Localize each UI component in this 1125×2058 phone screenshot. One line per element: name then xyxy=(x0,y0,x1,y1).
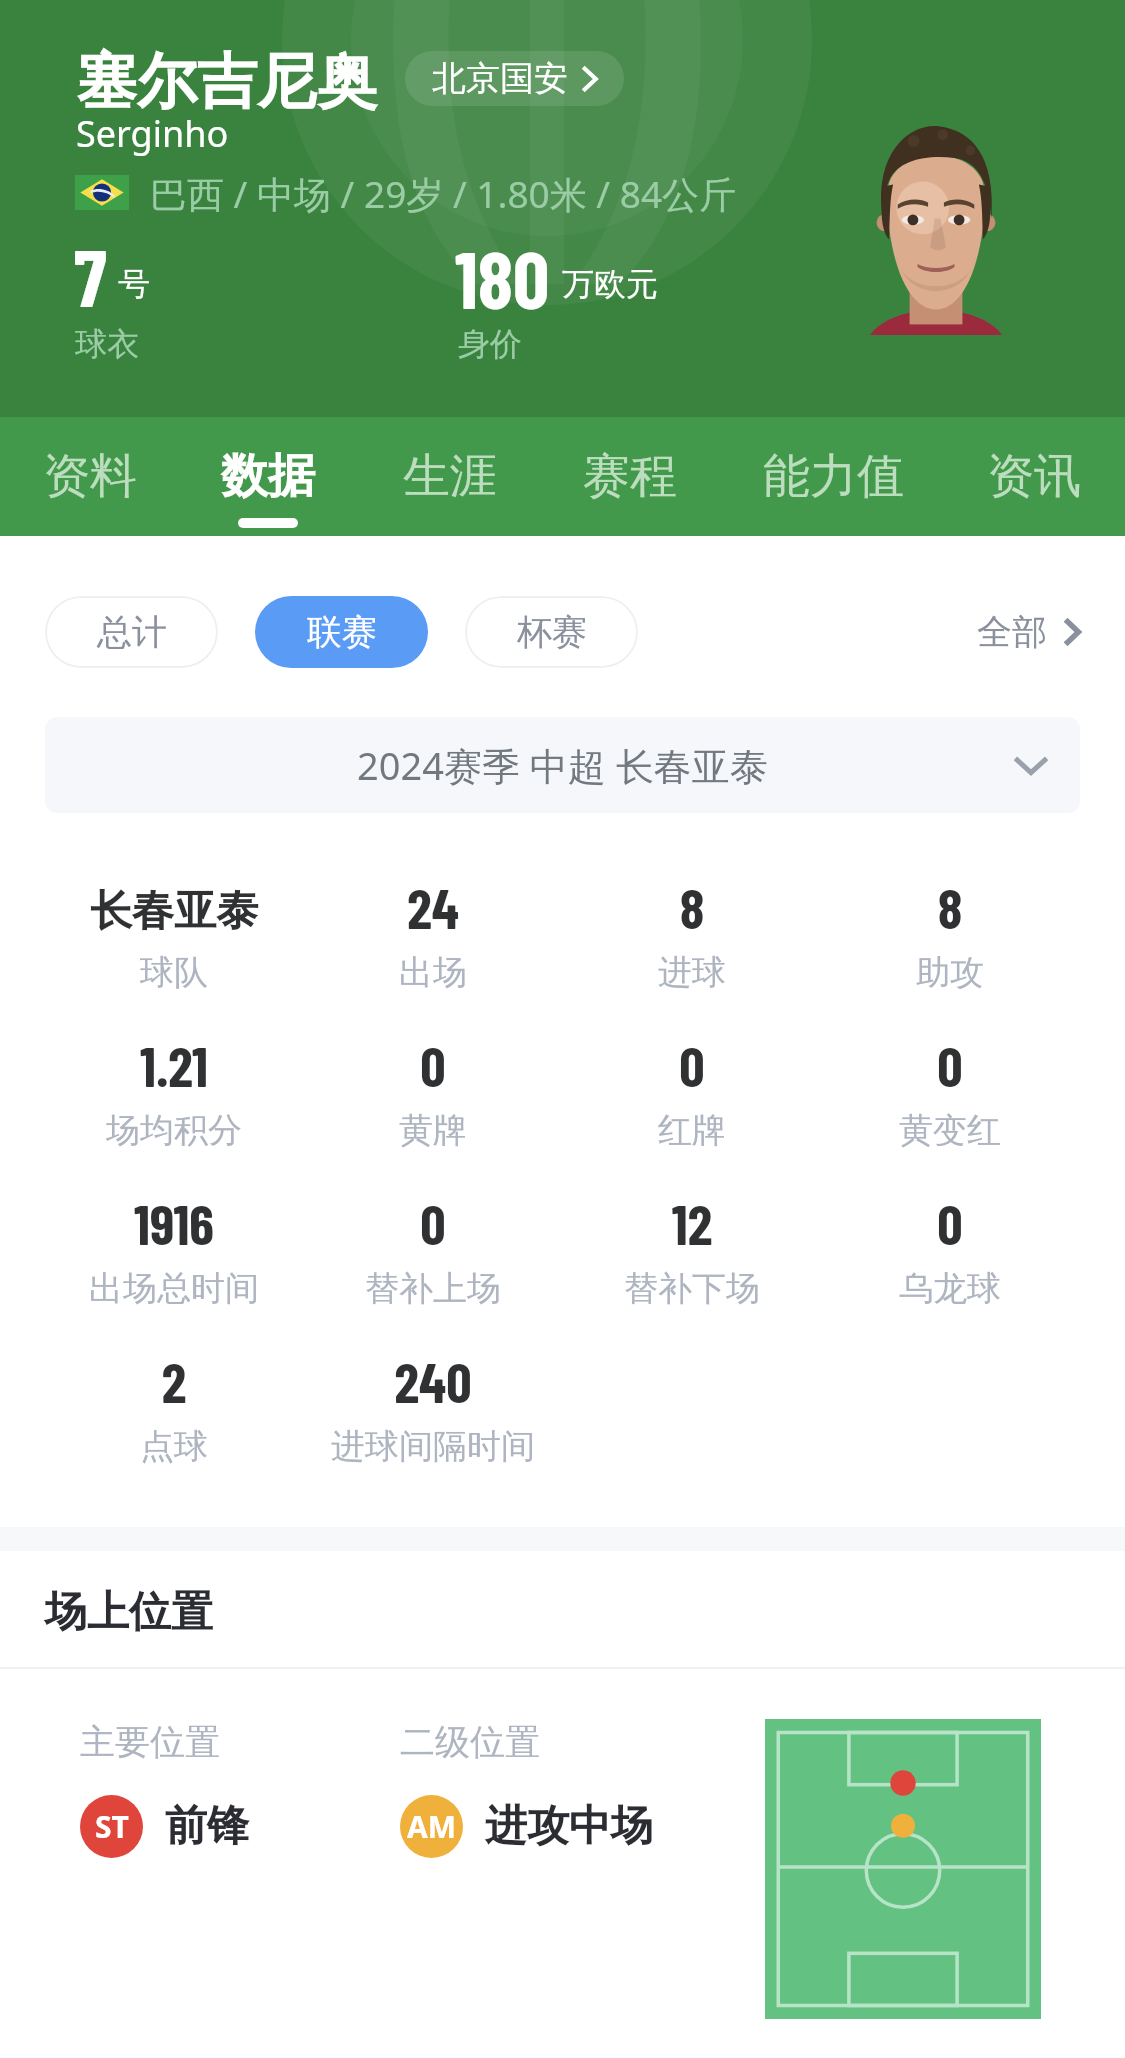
staticText: 乌龙球 xyxy=(821,1267,1079,1310)
button[interactable]: 资料 xyxy=(38,417,142,536)
button[interactable]: AM xyxy=(400,1795,463,1858)
staticText: 资讯 xyxy=(987,447,1081,506)
staticText: 场上位置 xyxy=(45,1586,213,1639)
other: Player photo xyxy=(870,123,1002,335)
button[interactable]: 数据 xyxy=(216,417,320,536)
button[interactable]: 8 xyxy=(821,859,1079,1009)
staticText: 0 xyxy=(304,1189,562,1256)
staticText: 赛程 xyxy=(583,447,677,506)
staticText: 球衣 xyxy=(75,324,139,364)
staticText: 2024赛季 中超 长春亚泰 xyxy=(357,739,768,791)
staticText: 前锋 xyxy=(165,1800,249,1853)
staticText: 全部 xyxy=(977,610,1047,654)
staticText: 助攻 xyxy=(821,951,1079,994)
staticText: 长春亚泰 xyxy=(45,885,303,938)
button[interactable]: 0 xyxy=(821,1175,1079,1325)
staticText: 7 xyxy=(74,227,107,323)
staticText: 联赛 xyxy=(307,610,377,654)
staticText: 红牌 xyxy=(563,1109,821,1152)
staticText: 球队 xyxy=(45,951,303,994)
other: Pitch position xyxy=(765,1719,1041,2019)
staticText: 身价 xyxy=(458,324,522,364)
button[interactable]: 北京国安 xyxy=(405,51,624,106)
button[interactable]: 24 xyxy=(304,859,562,1009)
staticText: 进攻中场 xyxy=(485,1800,653,1853)
staticText: AM xyxy=(407,1806,457,1847)
staticText: 0 xyxy=(563,1031,821,1098)
staticText: 1916 xyxy=(45,1189,303,1256)
button[interactable]: 0 xyxy=(304,1017,562,1167)
button[interactable]: 0 xyxy=(304,1175,562,1325)
staticText: 巴西 / 中场 / 29岁 / 1.80米 / 84公斤 xyxy=(150,168,737,219)
button[interactable]: 赛程 xyxy=(578,417,682,536)
button[interactable]: 能力值 xyxy=(757,417,909,536)
staticText: 点球 xyxy=(45,1425,303,1468)
staticText: 主要位置 xyxy=(80,1720,220,1764)
staticText: 0 xyxy=(304,1031,562,1098)
staticText: 进球间隔时间 xyxy=(304,1425,562,1468)
staticText: 杯赛 xyxy=(517,610,587,654)
staticText: 进球 xyxy=(563,951,821,994)
button[interactable]: 全部 xyxy=(977,596,1080,668)
staticText: 黄牌 xyxy=(304,1109,562,1152)
staticText: 黄变红 xyxy=(821,1109,1079,1152)
button[interactable]: 240 xyxy=(304,1333,562,1483)
button[interactable]: 联赛 xyxy=(255,596,428,668)
staticText: 0 xyxy=(821,1189,1079,1256)
button[interactable]: 资讯 xyxy=(982,417,1086,536)
button[interactable]: 2024赛季 中超 长春亚泰 xyxy=(45,717,1080,813)
staticText: 8 xyxy=(563,873,821,940)
button[interactable]: 总计 xyxy=(45,596,218,668)
staticText: 资料 xyxy=(43,447,137,506)
staticText: 8 xyxy=(821,873,1079,940)
staticText: Serginho xyxy=(76,109,229,158)
button[interactable]: 2 xyxy=(45,1333,303,1483)
staticText: ST xyxy=(95,1806,129,1847)
staticText: 场均积分 xyxy=(45,1109,303,1152)
staticText: 出场 xyxy=(304,951,562,994)
staticText: 能力值 xyxy=(763,447,904,506)
staticText: 生涯 xyxy=(403,447,497,506)
button[interactable]: 1916 xyxy=(45,1175,303,1325)
button[interactable]: 8 xyxy=(563,859,821,1009)
staticText: 二级位置 xyxy=(400,1720,540,1764)
staticText: 24 xyxy=(304,873,562,940)
staticText: 万欧元 xyxy=(562,264,658,304)
button[interactable]: 长春亚泰 xyxy=(45,859,303,1009)
button[interactable]: 杯赛 xyxy=(465,596,638,668)
button[interactable]: 生涯 xyxy=(398,417,502,536)
button[interactable]: 1.21 xyxy=(45,1017,303,1167)
staticText: 180 xyxy=(455,229,550,325)
staticText: 2 xyxy=(45,1347,303,1414)
staticText: 1.21 xyxy=(45,1031,303,1098)
button[interactable]: 0 xyxy=(563,1017,821,1167)
button[interactable]: 0 xyxy=(821,1017,1079,1167)
staticText: 12 xyxy=(563,1189,821,1256)
button[interactable]: ST xyxy=(80,1795,143,1858)
staticText: 数据 xyxy=(221,447,315,506)
staticText: 替补下场 xyxy=(563,1267,821,1310)
staticText: 替补上场 xyxy=(304,1267,562,1310)
staticText: 240 xyxy=(304,1347,562,1414)
staticText: 北京国安 xyxy=(432,57,568,100)
staticText: 出场总时间 xyxy=(45,1267,303,1310)
button[interactable]: 12 xyxy=(563,1175,821,1325)
staticText: 塞尔吉尼奥 xyxy=(77,44,377,120)
staticText: 0 xyxy=(821,1031,1079,1098)
staticText: 号 xyxy=(118,264,150,304)
staticText: 总计 xyxy=(97,610,167,654)
